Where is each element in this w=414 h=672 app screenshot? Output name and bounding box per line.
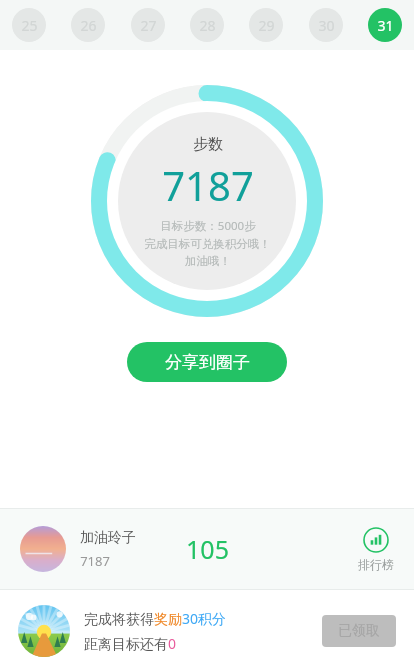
staticText: 7187: [162, 158, 254, 212]
staticText: 29: [258, 16, 275, 35]
button[interactable]: 28: [190, 8, 224, 42]
button[interactable]: 已领取: [322, 615, 396, 647]
staticText: 距离目标还有0: [84, 634, 177, 653]
button[interactable]: Friend avatar: [0, 509, 414, 589]
staticText: 105: [186, 532, 229, 566]
staticText: 30: [318, 16, 335, 35]
button[interactable]: 27: [131, 8, 165, 42]
staticText: 排行榜: [358, 557, 394, 572]
staticText: 完成将获得奖励30积分: [84, 609, 227, 628]
staticText: 28: [199, 16, 216, 35]
button[interactable]: 30: [309, 8, 343, 42]
staticText: 已领取: [338, 622, 380, 640]
staticText: 31: [377, 16, 394, 35]
other: Friend avatar: [20, 526, 66, 572]
button[interactable]: 分享到圈子: [127, 342, 287, 382]
button[interactable]: 29: [249, 8, 283, 42]
staticText: 目标步数：5000步: [160, 218, 256, 234]
staticText: 27: [140, 16, 157, 35]
staticText: 7187: [80, 552, 110, 570]
staticText: 加油哦！: [185, 254, 231, 268]
button[interactable]: Reward illustration: [0, 590, 414, 672]
staticText: 完成目标可兑换积分哦！: [144, 237, 271, 251]
other: Reward illustration: [18, 605, 70, 657]
staticText: 步数: [193, 135, 223, 154]
staticText: 加油玲子: [80, 529, 136, 547]
button[interactable]: 25: [12, 8, 46, 42]
staticText: 25: [21, 16, 38, 35]
button[interactable]: 排行榜: [358, 527, 394, 572]
staticText: 分享到圈子: [165, 352, 250, 373]
button[interactable]: 26: [71, 8, 105, 42]
staticText: 26: [80, 16, 97, 35]
button[interactable]: 31: [368, 8, 402, 42]
